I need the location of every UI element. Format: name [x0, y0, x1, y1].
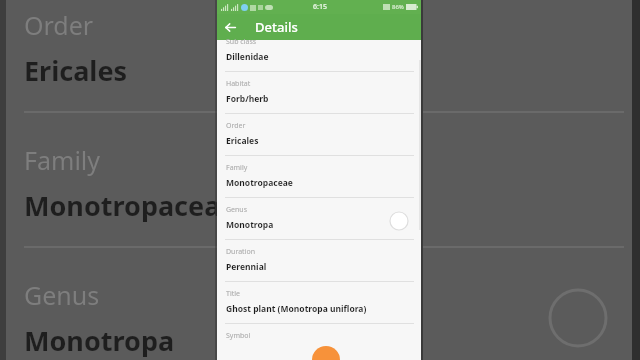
- staticText: Ericales: [226, 135, 259, 147]
- button[interactable]: Family: [217, 156, 422, 197]
- staticText: Details: [255, 18, 298, 36]
- staticText: Monotropa: [226, 219, 274, 231]
- staticText: Sub class: [226, 37, 257, 47]
- staticText: Order: [226, 121, 246, 131]
- staticText: Family: [24, 143, 101, 177]
- staticText: Monotropaceae: [226, 177, 293, 189]
- staticText: Genus: [226, 205, 248, 215]
- staticText: Habitat: [226, 79, 251, 89]
- staticText: Forb/herb: [226, 93, 269, 105]
- staticText: Monotropa: [24, 322, 175, 359]
- button[interactable]: Sub class: [217, 30, 422, 71]
- button[interactable]: Order: [217, 114, 422, 155]
- staticText: Family: [226, 163, 248, 173]
- button[interactable]: Title: [217, 282, 422, 323]
- staticText: Dillenidae: [226, 51, 269, 63]
- staticText: Duration: [226, 247, 256, 257]
- staticText: Order: [24, 8, 94, 42]
- button[interactable]: Habitat: [217, 72, 422, 113]
- button[interactable]: Symbol: [217, 324, 422, 350]
- staticText: Title: [226, 289, 240, 299]
- staticText: Ghost plant (Monotropa uniflora): [226, 303, 367, 315]
- button[interactable]: Genus: [217, 198, 422, 239]
- button[interactable]: Back: [217, 14, 243, 40]
- staticText: Monotropaceae: [24, 187, 237, 224]
- staticText: Genus: [24, 278, 100, 312]
- staticText: 6:15: [313, 2, 327, 12]
- button[interactable]: Duration: [217, 240, 422, 281]
- staticText: Ericales: [24, 52, 128, 89]
- button[interactable]: Add: [312, 346, 340, 360]
- staticText: Perennial: [226, 261, 267, 273]
- staticText: 86%: [392, 3, 404, 11]
- staticText: Symbol: [226, 331, 251, 341]
